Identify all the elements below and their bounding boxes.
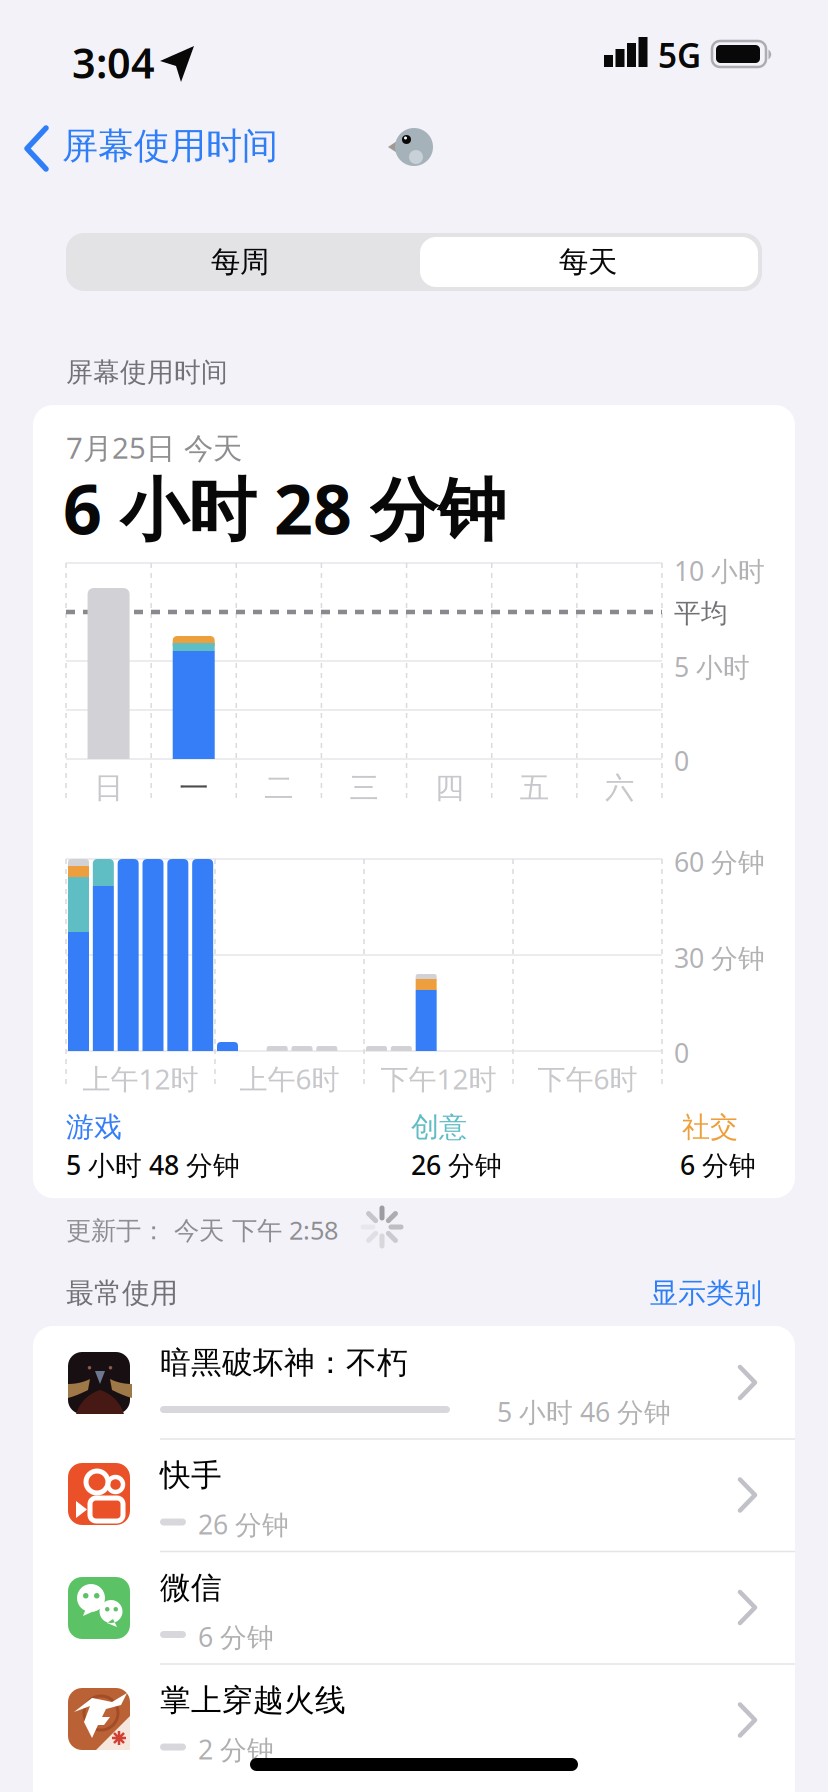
staticText: 6 分钟	[198, 1619, 274, 1654]
button[interactable]: 暗黑破坏神：不朽	[0, 0, 828, 1792]
staticText: 5 小时 48 分钟	[66, 1147, 240, 1182]
staticText: 社交	[682, 1110, 738, 1144]
staticText: 四	[435, 770, 464, 806]
staticText: 快手	[160, 1456, 222, 1494]
staticText: 5 小时 46 分钟	[497, 1394, 671, 1429]
button[interactable]: 微信	[0, 0, 828, 1792]
staticText: 三	[349, 770, 378, 806]
button[interactable]: 每周	[66, 233, 414, 291]
staticText: 7月25日 今天	[66, 428, 242, 467]
staticText: 30 分钟	[674, 940, 765, 975]
staticText: 五	[520, 770, 549, 806]
button[interactable]: 快手	[0, 0, 828, 1792]
staticText: 最常使用	[66, 1276, 178, 1310]
staticText: 一	[179, 770, 208, 806]
staticText: 掌上穿越火线	[160, 1681, 346, 1719]
staticText: 创意	[411, 1110, 467, 1144]
staticText: 6 分钟	[680, 1147, 756, 1182]
staticText: 屏幕使用时间	[62, 124, 278, 168]
staticText: 暗黑破坏神：不朽	[160, 1344, 408, 1382]
staticText: 0	[674, 1035, 689, 1070]
staticText: 六	[605, 770, 634, 806]
staticText: 2 分钟	[198, 1731, 274, 1767]
staticText: 日	[94, 770, 123, 806]
staticText: 26 分钟	[411, 1147, 502, 1182]
staticText: 6 小时 28 分钟	[63, 463, 506, 553]
button[interactable]: 屏幕使用时间	[0, 0, 300, 60]
staticText: 26 分钟	[198, 1506, 289, 1542]
staticText: 屏幕使用时间	[66, 356, 228, 389]
staticText: 平均	[674, 597, 728, 630]
staticText: 二	[264, 770, 293, 806]
staticText: 3:04	[72, 35, 155, 90]
staticText: 60 分钟	[674, 844, 765, 879]
staticText: 上午6时	[239, 1060, 339, 1097]
staticText: 游戏	[66, 1110, 122, 1144]
button[interactable]: 每天	[414, 233, 762, 291]
button[interactable]: 掌上穿越火线	[0, 0, 828, 1792]
staticText: 下午12时	[380, 1060, 496, 1097]
staticText: 5 小时	[674, 649, 750, 684]
staticText: 上午12时	[82, 1060, 198, 1097]
staticText: 更新于： 今天 下午 2:58	[66, 1213, 338, 1247]
staticText: 每天	[559, 244, 617, 280]
staticText: 10 小时	[674, 553, 765, 588]
staticText: 微信	[160, 1569, 222, 1607]
staticText: 显示类别	[650, 1276, 762, 1310]
staticText: 下午6时	[537, 1060, 637, 1097]
staticText: 0	[674, 743, 689, 778]
staticText: 每周	[211, 244, 269, 280]
staticText: 5G	[658, 33, 701, 77]
